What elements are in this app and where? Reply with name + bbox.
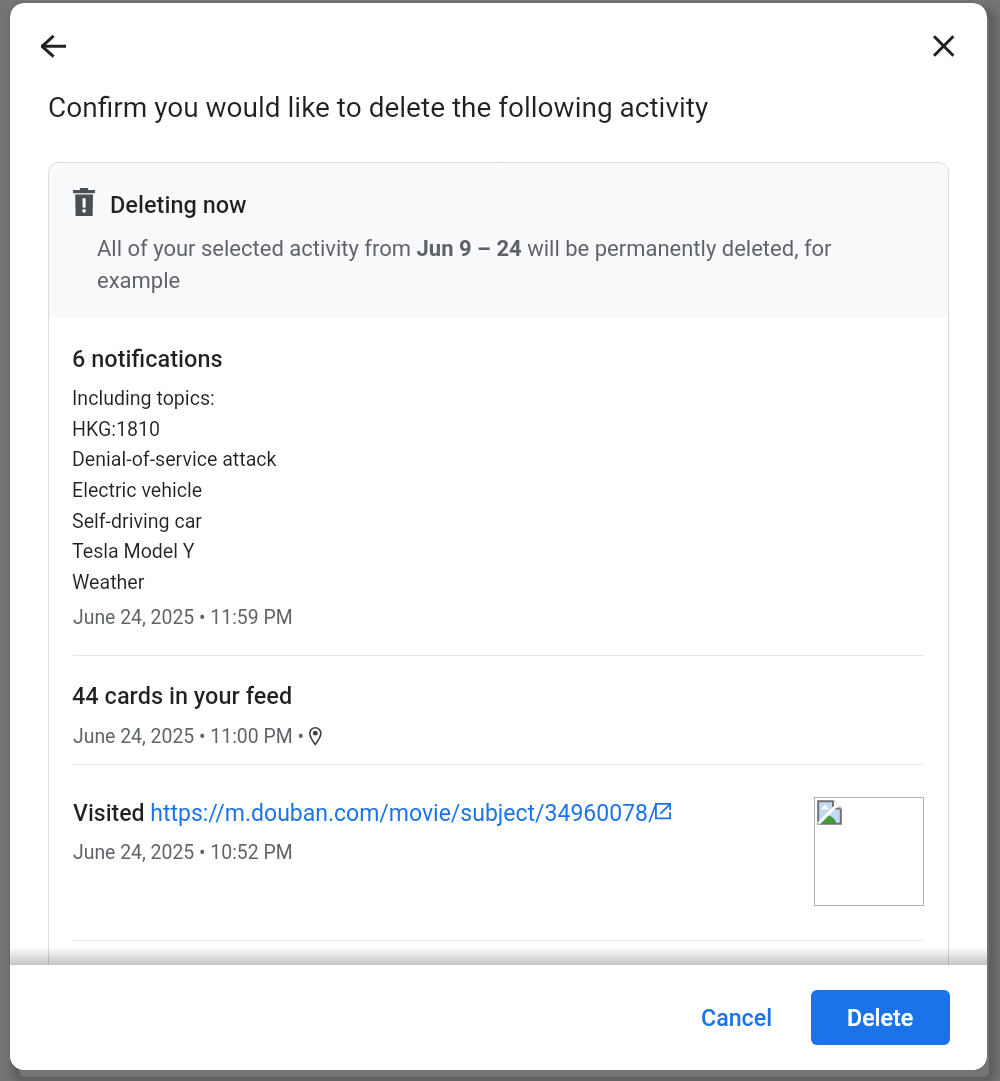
staticText: Visited https://m.douban.com/movie/subje… (73, 800, 658, 827)
staticText: 44 cards in your feed (72, 682, 293, 710)
staticText: All of your selected activity from Jun 9… (97, 236, 857, 293)
staticText: 6 notifications (72, 345, 223, 373)
staticText: Weather (72, 571, 145, 594)
button[interactable] (49, 317, 948, 642)
button[interactable] (49, 765, 948, 940)
staticText: Deleting now (110, 191, 247, 219)
staticText: Tesla Model Y (72, 540, 195, 563)
staticText: Electric vehicle (72, 479, 203, 502)
staticText: Confirm you would like to delete the fol… (48, 91, 709, 124)
staticText: Including topics: (72, 387, 215, 410)
button[interactable]: Back (29, 22, 78, 71)
staticText: Cancel (701, 1004, 773, 1031)
staticText: Denial-of-service attack (72, 448, 277, 471)
button[interactable]: Delete (811, 990, 950, 1045)
staticText: June 24, 2025 • 10:52 PM (73, 841, 293, 864)
staticText: HKG:1810 (72, 418, 161, 441)
staticText: Self-driving car (72, 510, 202, 533)
staticText: June 24, 2025 • 11:00 PM • (73, 725, 304, 748)
staticText: June 24, 2025 • 11:59 PM (73, 606, 293, 629)
button[interactable]: Close (919, 22, 968, 71)
button[interactable]: Cancel (679, 990, 795, 1045)
button[interactable] (49, 656, 948, 763)
staticText: Delete (847, 1004, 914, 1031)
